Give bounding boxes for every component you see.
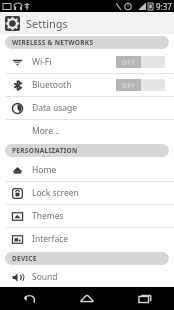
staticText: PERSONALIZATION — [12, 146, 78, 155]
button[interactable]: Sound — [0, 267, 174, 287]
staticText: Sound — [32, 271, 58, 283]
staticText: Home — [32, 164, 57, 176]
button[interactable]: Data usage — [0, 97, 174, 119]
staticText: Data usage — [32, 102, 78, 114]
staticText: Wi-Fi — [32, 56, 52, 68]
staticText: WIRELESS & NETWORKS — [12, 38, 94, 47]
button[interactable]: More... — [0, 120, 174, 142]
button[interactable]: Home — [58, 287, 116, 310]
button[interactable]: Interface — [0, 228, 174, 250]
button[interactable]: Themes — [0, 205, 174, 227]
button[interactable]: Home — [0, 159, 174, 181]
staticText: DEVICE — [12, 254, 37, 263]
button[interactable]: Lock screen — [0, 182, 174, 204]
button[interactable]: Wi-Fi — [0, 51, 174, 73]
staticText: Settings — [26, 16, 68, 31]
button[interactable]: Toggle off — [116, 79, 165, 91]
staticText: Interface — [32, 233, 69, 245]
button[interactable]: Settings — [0, 12, 174, 34]
staticText: 9:37 — [156, 1, 172, 12]
staticText: OFF — [122, 81, 136, 90]
staticText: Themes — [32, 210, 64, 222]
button[interactable]: Bluetooth — [0, 74, 174, 96]
staticText: More... — [32, 125, 60, 137]
button[interactable]: Back — [0, 287, 58, 310]
staticText: Lock screen — [32, 187, 79, 199]
staticText: OFF — [122, 58, 136, 67]
staticText: Bluetooth — [32, 79, 72, 91]
button[interactable]: Toggle off — [116, 56, 165, 68]
button[interactable]: Recent apps — [116, 287, 174, 310]
